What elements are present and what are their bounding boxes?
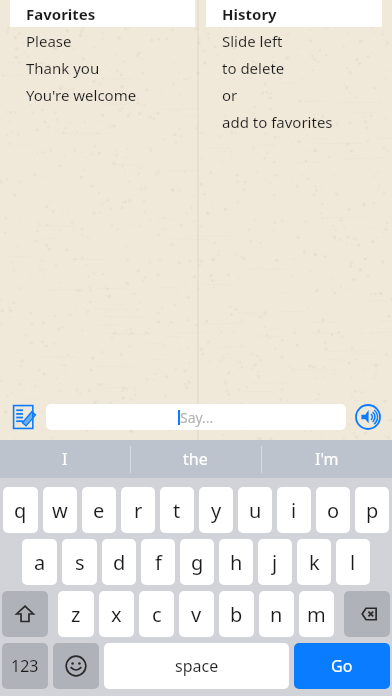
button[interactable]: I'm bbox=[261, 440, 392, 478]
staticText: q bbox=[14, 497, 27, 524]
staticText: s bbox=[75, 549, 85, 576]
staticText: t bbox=[173, 497, 181, 524]
button[interactable]: o bbox=[316, 487, 350, 533]
button[interactable]: to delete bbox=[197, 54, 392, 81]
button[interactable]: d bbox=[102, 539, 136, 585]
staticText: y bbox=[211, 497, 222, 524]
button[interactable]: a bbox=[22, 539, 57, 585]
button[interactable]: g bbox=[180, 539, 214, 585]
button[interactable]: Favorites bbox=[10, 0, 195, 27]
button[interactable]: Please bbox=[0, 27, 197, 54]
staticText: Say... bbox=[180, 408, 214, 427]
staticText: m bbox=[307, 601, 326, 628]
staticText: add to favorites bbox=[222, 112, 333, 132]
button[interactable]: c bbox=[139, 591, 174, 637]
staticText: r bbox=[134, 497, 143, 524]
button[interactable]: p bbox=[355, 487, 389, 533]
staticText: to delete bbox=[222, 58, 285, 78]
button[interactable]: Shift bbox=[2, 591, 48, 637]
button[interactable]: I bbox=[0, 440, 130, 478]
button[interactable]: e bbox=[82, 487, 116, 533]
button[interactable]: or bbox=[197, 81, 392, 108]
staticText: p bbox=[366, 497, 379, 524]
button[interactable]: u bbox=[238, 487, 272, 533]
button[interactable]: f bbox=[141, 539, 175, 585]
button[interactable]: w bbox=[43, 487, 77, 533]
button[interactable]: Go bbox=[294, 643, 390, 689]
staticText: Slide left bbox=[222, 31, 283, 51]
staticText: j bbox=[272, 549, 278, 576]
staticText: w bbox=[52, 497, 68, 524]
button[interactable]: i bbox=[277, 487, 311, 533]
staticText: v bbox=[191, 601, 202, 628]
staticText: the bbox=[183, 448, 208, 470]
staticText: You're welcome bbox=[26, 85, 137, 105]
button[interactable]: Backspace bbox=[344, 591, 390, 637]
button[interactable]: x bbox=[99, 591, 134, 637]
staticText: I'm bbox=[315, 448, 339, 470]
staticText: c bbox=[152, 601, 162, 628]
button[interactable]: z bbox=[58, 591, 94, 637]
staticText: x bbox=[111, 601, 122, 628]
button[interactable]: v bbox=[179, 591, 214, 637]
staticText: n bbox=[270, 601, 283, 628]
staticText: e bbox=[93, 497, 105, 524]
staticText: l bbox=[350, 549, 356, 576]
button[interactable]: History bbox=[206, 0, 382, 27]
button[interactable]: You're welcome bbox=[0, 81, 197, 108]
button[interactable]: n bbox=[259, 591, 294, 637]
button[interactable]: the bbox=[130, 440, 261, 478]
button[interactable]: j bbox=[258, 539, 292, 585]
button[interactable]: l bbox=[336, 539, 370, 585]
button[interactable]: k bbox=[297, 539, 331, 585]
staticText: a bbox=[34, 549, 46, 576]
staticText: u bbox=[249, 497, 262, 524]
staticText: b bbox=[230, 601, 243, 628]
button[interactable]: Say... bbox=[46, 404, 346, 430]
staticText: I bbox=[62, 448, 68, 470]
staticText: g bbox=[191, 549, 204, 576]
staticText: o bbox=[327, 497, 340, 524]
staticText: Thank you bbox=[26, 58, 100, 78]
button[interactable]: Speak bbox=[352, 401, 384, 433]
button[interactable]: r bbox=[121, 487, 155, 533]
staticText: f bbox=[155, 549, 162, 576]
button[interactable]: Emoji bbox=[53, 643, 99, 689]
button[interactable]: 123 bbox=[2, 643, 48, 689]
staticText: h bbox=[230, 549, 243, 576]
staticText: History bbox=[222, 4, 277, 24]
staticText: d bbox=[113, 549, 126, 576]
button[interactable]: h bbox=[219, 539, 253, 585]
staticText: 123 bbox=[11, 655, 39, 677]
button[interactable]: Thank you bbox=[0, 54, 197, 81]
staticText: Go bbox=[331, 655, 353, 677]
button[interactable]: s bbox=[62, 539, 97, 585]
staticText: or bbox=[222, 85, 238, 105]
button[interactable]: q bbox=[3, 487, 38, 533]
button[interactable]: y bbox=[199, 487, 233, 533]
button[interactable]: Slide left bbox=[197, 27, 392, 54]
button[interactable]: space bbox=[104, 643, 289, 689]
button[interactable]: add to favorites bbox=[197, 108, 392, 135]
staticText: k bbox=[309, 549, 320, 576]
staticText: Favorites bbox=[26, 4, 96, 24]
staticText: Please bbox=[26, 31, 72, 51]
staticText: z bbox=[71, 601, 81, 628]
button[interactable]: t bbox=[160, 487, 194, 533]
button[interactable]: b bbox=[219, 591, 254, 637]
button[interactable]: m bbox=[299, 591, 334, 637]
staticText: i bbox=[291, 497, 297, 524]
button[interactable]: Edit bbox=[8, 401, 40, 433]
staticText: space bbox=[175, 655, 219, 677]
